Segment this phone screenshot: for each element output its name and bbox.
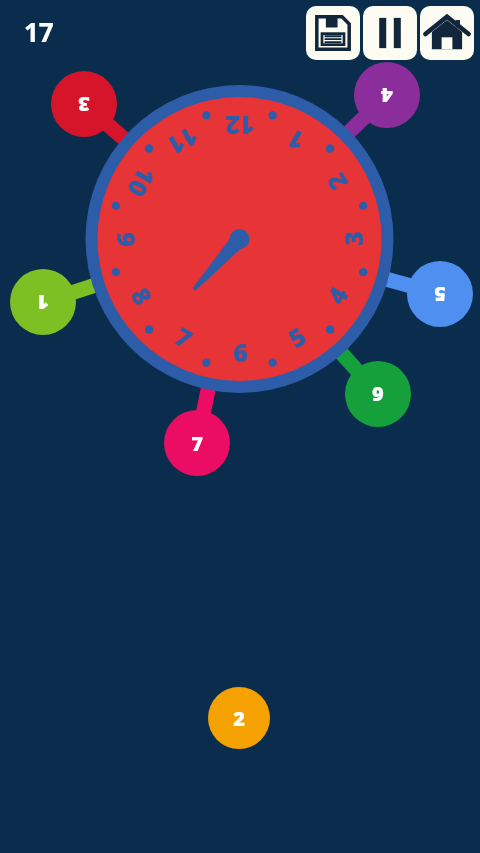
staticText: 6: [372, 381, 384, 408]
staticText: 4: [381, 82, 393, 109]
staticText: 5: [282, 318, 311, 353]
button[interactable]: 5: [407, 261, 473, 327]
staticText: 2: [233, 705, 245, 732]
staticText: 9: [112, 232, 144, 247]
button[interactable]: Save: [306, 6, 360, 60]
staticText: 4: [319, 280, 354, 309]
staticText: 3: [336, 231, 368, 246]
button[interactable]: Pause: [363, 6, 417, 60]
button[interactable]: 6: [345, 361, 411, 427]
staticText: 11: [163, 121, 205, 163]
staticText: 7: [170, 319, 199, 354]
button[interactable]: 1: [10, 269, 76, 335]
staticText: 1: [37, 289, 49, 316]
button[interactable]: 7: [164, 410, 230, 476]
staticText: 10: [122, 162, 164, 204]
staticText: 6: [233, 335, 248, 367]
staticText: 3: [78, 91, 90, 118]
button[interactable]: 2: [208, 687, 270, 749]
staticText: 17: [24, 14, 54, 49]
staticText: 12: [225, 111, 255, 143]
staticText: 1: [281, 124, 310, 159]
button[interactable]: Home: [420, 6, 474, 60]
button[interactable]: 4: [354, 62, 420, 128]
staticText: 2: [318, 168, 353, 197]
staticText: 5: [434, 281, 446, 308]
staticText: 8: [126, 281, 161, 310]
button[interactable]: 3: [51, 71, 117, 137]
staticText: 7: [191, 430, 203, 457]
